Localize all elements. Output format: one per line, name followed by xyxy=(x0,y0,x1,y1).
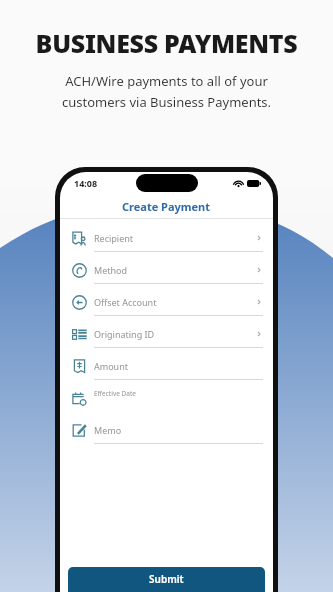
button[interactable]: Amount xyxy=(60,353,273,385)
button[interactable]: Method xyxy=(60,257,273,289)
staticText: Recipient xyxy=(94,232,255,244)
button[interactable]: Effective Date xyxy=(60,385,273,417)
button[interactable]: Offset Account xyxy=(60,289,273,321)
staticText: BUSINESS PAYMENTS xyxy=(14,26,319,60)
staticText: 14:08 xyxy=(74,177,98,189)
staticText: Memo xyxy=(94,424,263,436)
staticText: ACH/Wire payments to all of your xyxy=(14,72,319,90)
button[interactable]: Memo xyxy=(60,417,273,449)
button[interactable]: Recipient xyxy=(60,225,273,257)
staticText: customers via Business Payments. xyxy=(14,93,319,111)
button[interactable]: Submit xyxy=(68,567,265,592)
staticText: Originating ID xyxy=(94,328,255,340)
staticText: Amount xyxy=(94,360,263,372)
staticText: Effective Date xyxy=(94,389,263,398)
staticText: Method xyxy=(94,264,255,276)
staticText: Create Payment xyxy=(122,199,211,214)
staticText: Submit xyxy=(149,572,184,586)
staticText: Offset Account xyxy=(94,296,255,308)
button[interactable]: Originating ID xyxy=(60,321,273,353)
